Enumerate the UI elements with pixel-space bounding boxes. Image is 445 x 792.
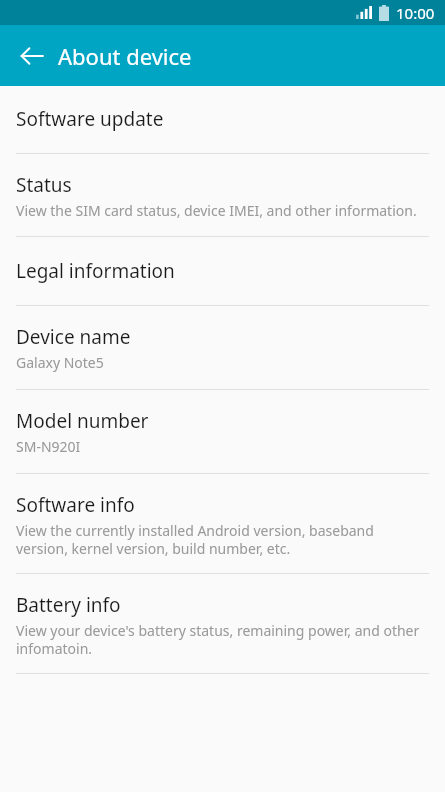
staticText: View your device's battery status, remai… <box>16 621 429 658</box>
button[interactable]: Status <box>0 154 445 236</box>
button[interactable]: Battery info <box>0 574 445 673</box>
button[interactable]: Legal information <box>0 237 445 305</box>
button[interactable]: Device name <box>0 306 445 389</box>
staticText: Status <box>16 172 72 198</box>
button[interactable]: Back <box>10 34 54 78</box>
staticText: 10:00 <box>396 3 435 23</box>
staticText: Battery info <box>16 592 121 618</box>
staticText: Device name <box>16 324 131 350</box>
button[interactable]: Model number <box>0 390 445 473</box>
button[interactable]: Software update <box>0 86 445 153</box>
staticText: Model number <box>16 408 149 434</box>
staticText: View the SIM card status, device IMEI, a… <box>16 201 417 220</box>
staticText: Galaxy Note5 <box>16 353 104 372</box>
staticText: SM-N920I <box>16 437 81 456</box>
staticText: Legal information <box>16 258 175 284</box>
button[interactable]: Software info <box>0 474 445 573</box>
staticText: About device <box>58 41 192 71</box>
staticText: View the currently installed Android ver… <box>16 521 429 558</box>
staticText: Software info <box>16 492 135 518</box>
staticText: Software update <box>16 106 164 132</box>
